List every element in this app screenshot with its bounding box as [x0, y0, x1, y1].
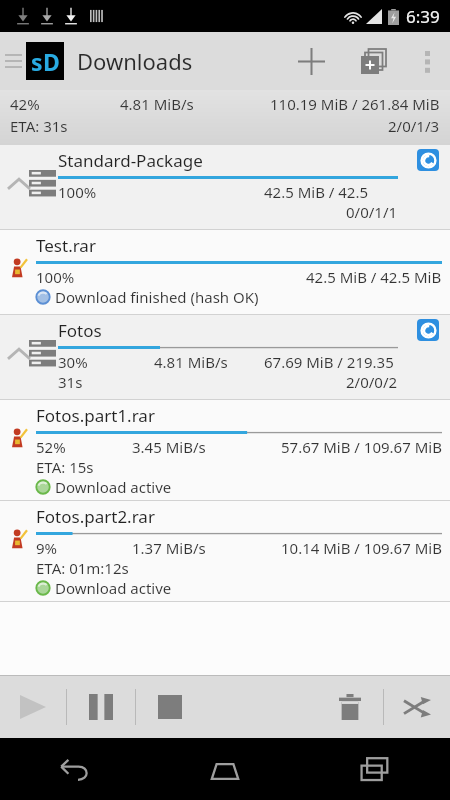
button[interactable]: Home	[150, 738, 300, 800]
button[interactable]: More options	[404, 32, 450, 90]
staticText: 1.37 MiB/s	[132, 538, 206, 558]
staticText: Standard-Package	[58, 149, 203, 172]
staticText: 4.81 MiB/s	[154, 352, 228, 372]
staticText: 3.45 MiB/s	[132, 437, 206, 457]
staticText: 2/0/0/2	[346, 372, 398, 392]
button[interactable]: Fotos	[0, 315, 450, 399]
staticText: 57.67 MiB / 109.67 MiB	[281, 437, 442, 457]
staticText: 100%	[36, 267, 75, 287]
button[interactable]: Delete	[317, 676, 383, 738]
button[interactable]: Shuffle	[384, 676, 450, 738]
staticText: Download active	[55, 477, 172, 497]
staticText: Test.rar	[36, 234, 96, 257]
button[interactable]: Fotos.part2.rar	[0, 501, 450, 601]
staticText: 31s	[58, 372, 83, 392]
staticText: 0/0/1/1	[346, 202, 398, 222]
staticText: 4.81 MiB/s	[120, 94, 194, 114]
button[interactable]: Test.rar	[0, 230, 450, 314]
staticText: 110.19 MiB / 261.84 MiB	[270, 94, 440, 114]
staticText: 10.14 MiB / 109.67 MiB	[281, 538, 442, 558]
button[interactable]: Stop	[136, 676, 204, 738]
staticText: Download active	[55, 578, 172, 598]
staticText: 52%	[36, 437, 66, 457]
staticText: 6:39	[406, 5, 440, 28]
staticText: 42%	[10, 94, 40, 114]
staticText: ETA: 15s	[36, 457, 94, 477]
button[interactable]: Recent apps	[300, 738, 450, 800]
button[interactable]: Standard-Package	[0, 145, 450, 229]
button[interactable]: Start	[0, 676, 66, 738]
button[interactable]: Pause	[67, 676, 135, 738]
button[interactable]: Add download	[280, 32, 342, 90]
staticText: Fotos.part1.rar	[36, 404, 155, 427]
staticText: 2/0/1/3	[388, 116, 440, 136]
staticText: Downloads	[77, 46, 193, 76]
staticText: Download finished (hash OK)	[55, 287, 259, 307]
staticText: Fotos	[58, 319, 102, 342]
staticText: ETA: 01m:12s	[36, 558, 129, 578]
staticText: D	[43, 46, 60, 77]
staticText: 67.69 MiB / 219.35 MiB	[264, 352, 398, 372]
button[interactable]: Open navigation drawer	[0, 32, 26, 90]
staticText: 9%	[36, 538, 58, 558]
staticText: 100%	[58, 182, 97, 202]
staticText: 42.5 MiB / 42.5 MiB	[264, 182, 398, 202]
button[interactable]: Add package	[342, 32, 404, 90]
button[interactable]: Back	[0, 738, 150, 800]
staticText: 42.5 MiB / 42.5 MiB	[306, 267, 442, 287]
staticText: Fotos.part2.rar	[36, 505, 155, 528]
staticText: s	[31, 46, 43, 77]
staticText: 30%	[58, 352, 88, 372]
button[interactable]: Fotos.part1.rar	[0, 400, 450, 500]
staticText: ETA: 31s	[10, 116, 68, 136]
